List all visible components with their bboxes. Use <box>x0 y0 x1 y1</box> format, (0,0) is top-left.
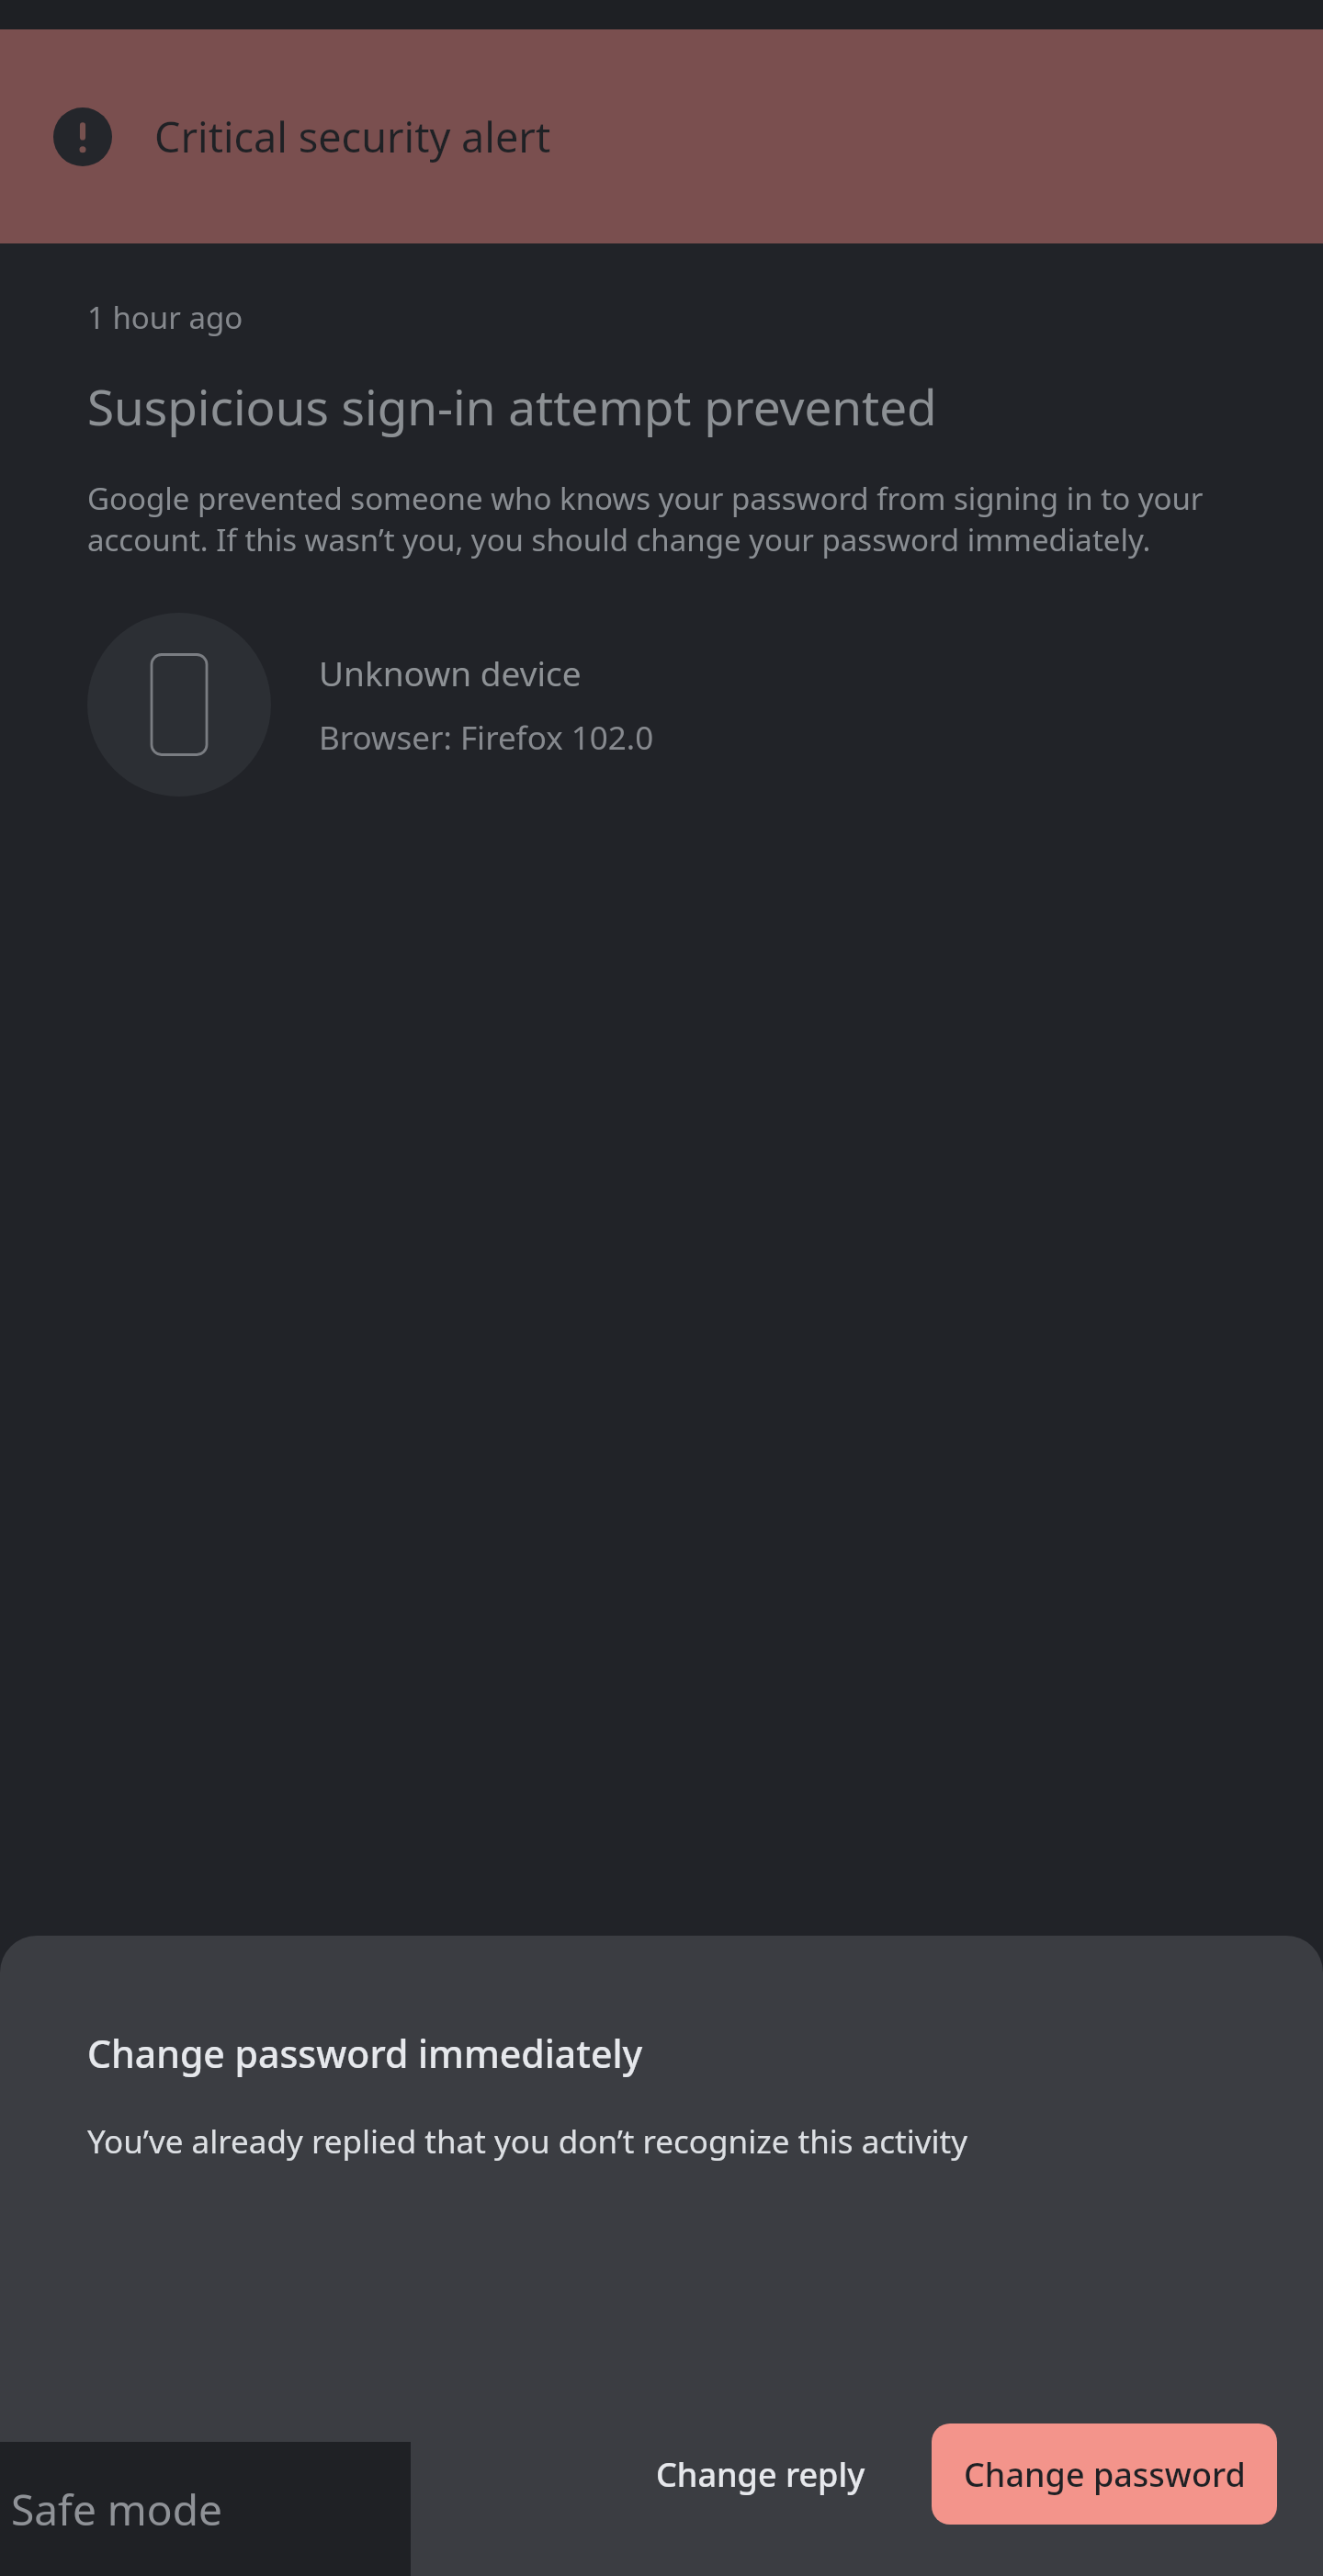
staticText: Unknown device <box>319 650 582 695</box>
staticText: You’ve already replied that you don’t re… <box>87 2119 968 2164</box>
staticText: 1 hour ago <box>87 297 243 338</box>
staticText: Change reply <box>656 2452 865 2497</box>
button[interactable]: Change reply <box>623 2426 899 2523</box>
button[interactable]: Change password <box>932 2423 1277 2525</box>
staticText: Suspicious sign-in attempt prevented <box>87 373 937 439</box>
staticText: Change password <box>964 2452 1246 2497</box>
staticText: Safe mode <box>11 2480 222 2538</box>
staticText: Browser: Firefox 102.0 <box>319 716 654 760</box>
staticText: Critical security alert <box>154 108 551 164</box>
staticText: Google prevented someone who knows your … <box>87 478 1259 559</box>
button[interactable]: Critical security alert <box>0 29 1323 243</box>
button[interactable]: Unknown device <box>87 613 1259 797</box>
staticText: Change password immediately <box>87 2028 643 2079</box>
other: Safe mode <box>0 2442 411 2576</box>
